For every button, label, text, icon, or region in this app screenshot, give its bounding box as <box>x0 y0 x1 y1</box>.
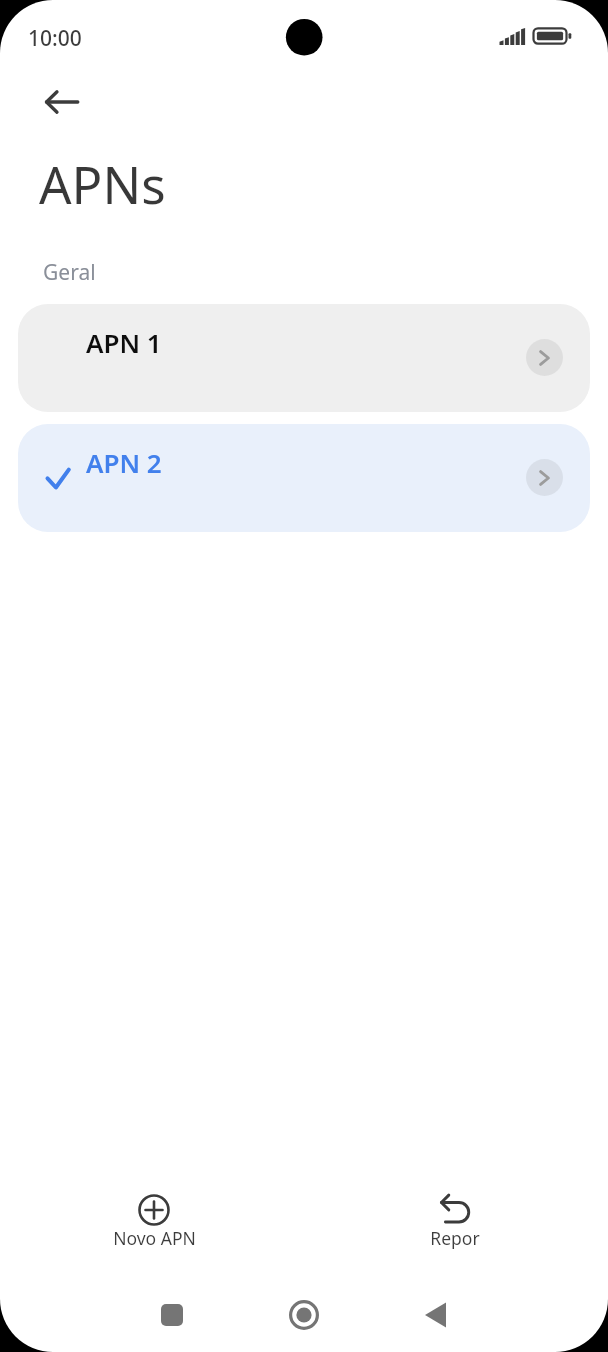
button[interactable]: Repor <box>375 1192 535 1252</box>
button[interactable]: Back <box>408 1287 464 1343</box>
staticText: Repor <box>430 1226 480 1250</box>
button[interactable]: Back <box>39 78 87 126</box>
button[interactable]: Novo APN <box>74 1192 234 1252</box>
button[interactable]: APN 1 <box>18 304 590 412</box>
staticText: Geral <box>43 258 96 287</box>
button[interactable]: APN 2 <box>18 424 590 532</box>
button[interactable]: Open details <box>526 459 563 496</box>
staticText: APNs <box>39 149 166 218</box>
staticText: 10:00 <box>28 24 82 53</box>
staticText: Novo APN <box>113 1226 196 1250</box>
button[interactable]: Home <box>276 1287 332 1343</box>
staticText: APN 2 <box>86 445 162 480</box>
button[interactable]: Open details <box>526 339 563 376</box>
button[interactable]: Recents <box>144 1287 200 1343</box>
staticText: APN 1 <box>86 325 162 360</box>
